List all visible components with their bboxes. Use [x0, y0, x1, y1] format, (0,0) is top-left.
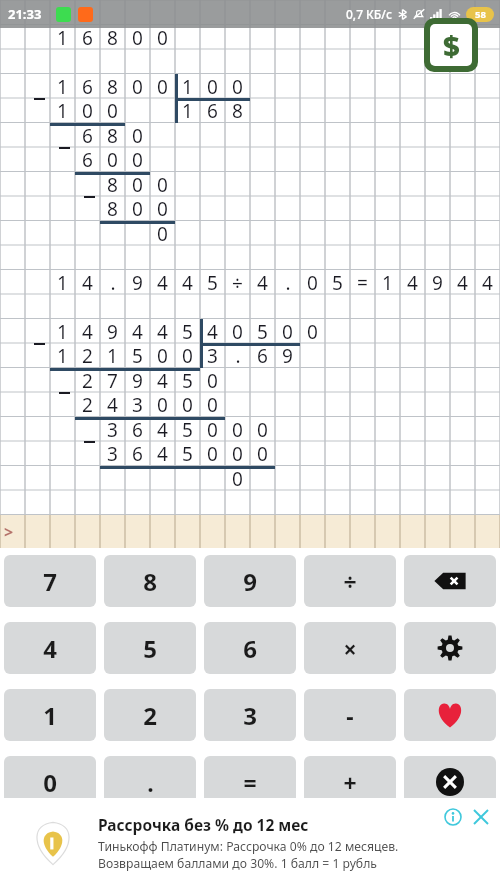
button[interactable]: .: [104, 756, 196, 808]
staticText: 0: [182, 392, 193, 417]
staticText: 9: [432, 270, 443, 295]
staticText: 0: [157, 221, 168, 246]
button[interactable]: -: [304, 689, 396, 741]
staticText: 8: [143, 565, 157, 598]
staticText: 3: [107, 441, 118, 466]
staticText: 1: [57, 319, 68, 344]
button[interactable]: 1: [4, 689, 96, 741]
staticText: 0: [232, 74, 243, 99]
staticText: 4: [107, 392, 118, 417]
staticText: 4: [157, 417, 168, 442]
staticText: 1: [57, 270, 68, 295]
button[interactable]: Clear: [404, 756, 496, 808]
staticText: 0: [157, 25, 168, 50]
staticText: 0: [107, 98, 118, 123]
staticText: 0: [157, 172, 168, 197]
staticText: 4: [82, 270, 93, 295]
button[interactable]: Close ad: [470, 806, 492, 828]
staticText: 7: [43, 565, 57, 598]
staticText: 4: [182, 270, 193, 295]
staticText: .: [285, 270, 291, 295]
button[interactable]: 2: [104, 689, 196, 741]
staticText: 6: [207, 98, 218, 123]
staticText: 4: [207, 319, 218, 344]
button[interactable]: Settings: [404, 622, 496, 674]
staticText: -: [346, 700, 354, 731]
staticText: 1: [182, 74, 193, 99]
staticText: 1: [43, 699, 57, 732]
button[interactable]: 6: [204, 622, 296, 674]
button[interactable]: ×: [304, 622, 396, 674]
staticText: 9: [243, 565, 257, 598]
staticText: 3: [207, 343, 218, 368]
staticText: 5: [182, 319, 193, 344]
staticText: 6: [82, 123, 93, 148]
staticText: 0: [132, 123, 143, 148]
staticText: .: [110, 270, 116, 295]
button[interactable]: 8: [104, 555, 196, 607]
staticText: 2: [82, 392, 93, 417]
staticText: 0: [232, 319, 243, 344]
staticText: 9: [107, 319, 118, 344]
staticText: 0: [132, 74, 143, 99]
staticText: 8: [107, 196, 118, 221]
button[interactable]: 9: [204, 555, 296, 607]
button[interactable]: 7: [4, 555, 96, 607]
staticText: ×: [343, 633, 357, 664]
staticText: 0: [232, 441, 243, 466]
staticText: 8: [107, 123, 118, 148]
button[interactable]: =: [204, 756, 296, 808]
staticText: 0: [307, 319, 318, 344]
staticText: =: [357, 270, 368, 295]
staticText: 1: [382, 270, 393, 295]
button[interactable]: 5: [104, 622, 196, 674]
staticText: 9: [132, 368, 143, 393]
staticText: 1: [57, 98, 68, 123]
staticText: 5: [132, 343, 143, 368]
button[interactable]: +: [304, 756, 396, 808]
staticText: 4: [482, 270, 493, 295]
button[interactable]: Ad info: [442, 806, 464, 828]
staticText: 7: [107, 368, 118, 393]
staticText: 8: [232, 98, 243, 123]
staticText: 8: [107, 172, 118, 197]
staticText: 0: [132, 172, 143, 197]
staticText: Тинькофф Платинум: Рассрочка 0% до 12 ме…: [98, 838, 399, 855]
staticText: 58: [475, 8, 486, 21]
button[interactable]: 3: [204, 689, 296, 741]
staticText: 0: [232, 466, 243, 491]
staticText: Возвращаем баллами до 30%. 1 балл = 1 ру…: [98, 855, 377, 872]
staticText: 1: [182, 98, 193, 123]
staticText: 0: [257, 417, 268, 442]
staticText: 1: [57, 343, 68, 368]
staticText: 0: [107, 147, 118, 172]
staticText: 0: [207, 417, 218, 442]
button[interactable]: 0: [4, 756, 96, 808]
staticText: 5: [182, 441, 193, 466]
staticText: 4: [407, 270, 418, 295]
staticText: 3: [107, 417, 118, 442]
button[interactable]: Favorites: [404, 689, 496, 741]
staticText: 6: [132, 441, 143, 466]
staticText: 1: [57, 74, 68, 99]
staticText: 5: [182, 368, 193, 393]
staticText: 0: [157, 74, 168, 99]
staticText: 1: [107, 343, 118, 368]
staticText: 0: [157, 392, 168, 417]
button[interactable]: 4: [4, 622, 96, 674]
button[interactable]: Рассрочка без % до 12 мес: [0, 798, 500, 888]
button[interactable]: ÷: [304, 555, 396, 607]
button[interactable]: Backspace: [404, 555, 496, 607]
staticText: 0: [207, 368, 218, 393]
staticText: 5: [332, 270, 343, 295]
staticText: 6: [132, 417, 143, 442]
staticText: 21:33: [8, 5, 42, 23]
staticText: 0: [82, 98, 93, 123]
staticText: 6: [82, 74, 93, 99]
staticText: 1: [57, 25, 68, 50]
staticText: 0: [257, 441, 268, 466]
staticText: 0: [307, 270, 318, 295]
staticText: 4: [43, 632, 57, 665]
button[interactable]: >: [0, 515, 500, 548]
button[interactable]: Currency: [424, 18, 478, 72]
